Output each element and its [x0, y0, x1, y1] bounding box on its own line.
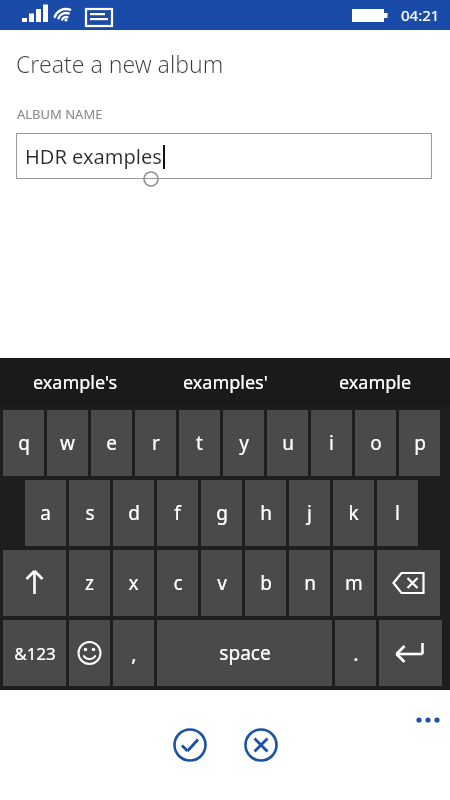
- button[interactable]: m: [333, 550, 374, 616]
- button[interactable]: c: [157, 550, 198, 616]
- staticText: y: [239, 430, 249, 456]
- button[interactable]: x: [113, 550, 154, 616]
- button[interactable]: j: [289, 480, 330, 546]
- button[interactable]: q: [3, 410, 44, 476]
- button[interactable]: HDR examples: [16, 133, 432, 179]
- button[interactable]: n: [289, 550, 330, 616]
- button[interactable]: example: [300, 358, 450, 406]
- button[interactable]: z: [69, 550, 110, 616]
- button[interactable]: examples': [150, 358, 300, 406]
- staticText: c: [173, 570, 183, 596]
- staticText: b: [260, 570, 272, 596]
- staticText: q: [18, 430, 30, 456]
- staticText: m: [345, 570, 363, 596]
- button[interactable]: l: [377, 480, 418, 546]
- staticText: f: [174, 500, 181, 526]
- staticText: HDR examples: [25, 143, 162, 170]
- staticText: o: [370, 430, 382, 456]
- button[interactable]: ,: [113, 620, 154, 686]
- staticText: h: [260, 500, 272, 526]
- button[interactable]: e: [91, 410, 132, 476]
- staticText: n: [304, 570, 316, 596]
- button[interactable]: Accept: [162, 717, 218, 773]
- staticText: u: [282, 430, 294, 456]
- button[interactable]: Emoji: [69, 620, 110, 686]
- button[interactable]: u: [267, 410, 308, 476]
- staticText: d: [128, 500, 140, 526]
- staticText: ALBUM NAME: [17, 105, 103, 123]
- staticText: a: [40, 500, 51, 526]
- button[interactable]: Shift: [3, 550, 66, 616]
- staticText: 04:21: [401, 5, 440, 25]
- button[interactable]: space: [157, 620, 332, 686]
- staticText: w: [60, 430, 75, 456]
- button[interactable]: a: [25, 480, 66, 546]
- button[interactable]: h: [245, 480, 286, 546]
- staticText: examples': [183, 370, 268, 395]
- button[interactable]: g: [201, 480, 242, 546]
- staticText: example: [339, 370, 412, 395]
- staticText: r: [152, 430, 160, 456]
- button[interactable]: y: [223, 410, 264, 476]
- staticText: example's: [33, 370, 118, 395]
- button[interactable]: b: [245, 550, 286, 616]
- button[interactable]: k: [333, 480, 374, 546]
- button[interactable]: p: [399, 410, 440, 476]
- button[interactable]: Cancel: [233, 717, 289, 773]
- staticText: s: [85, 500, 95, 526]
- staticText: space: [219, 640, 271, 666]
- button[interactable]: r: [135, 410, 176, 476]
- staticText: j: [307, 500, 312, 526]
- staticText: z: [85, 570, 94, 596]
- staticText: &123: [14, 642, 56, 665]
- staticText: v: [217, 570, 227, 596]
- staticText: .: [353, 640, 359, 667]
- button[interactable]: s: [69, 480, 110, 546]
- staticText: Create a new album: [16, 48, 224, 79]
- button[interactable]: example's: [0, 358, 150, 406]
- staticText: t: [196, 430, 203, 456]
- button[interactable]: d: [113, 480, 154, 546]
- button[interactable]: &123: [3, 620, 66, 686]
- staticText: x: [128, 570, 139, 596]
- staticText: e: [106, 430, 117, 456]
- button[interactable]: More options: [406, 698, 450, 742]
- staticText: g: [216, 500, 228, 526]
- staticText: k: [348, 500, 359, 526]
- button[interactable]: Backspace: [377, 550, 440, 616]
- button[interactable]: w: [47, 410, 88, 476]
- staticText: i: [329, 430, 334, 456]
- staticText: l: [395, 500, 400, 526]
- staticText: p: [414, 430, 426, 456]
- button[interactable]: i: [311, 410, 352, 476]
- button[interactable]: o: [355, 410, 396, 476]
- button[interactable]: v: [201, 550, 242, 616]
- button[interactable]: t: [179, 410, 220, 476]
- staticText: ,: [131, 640, 137, 667]
- button[interactable]: .: [335, 620, 376, 686]
- button[interactable]: Enter: [379, 620, 442, 686]
- button[interactable]: f: [157, 480, 198, 546]
